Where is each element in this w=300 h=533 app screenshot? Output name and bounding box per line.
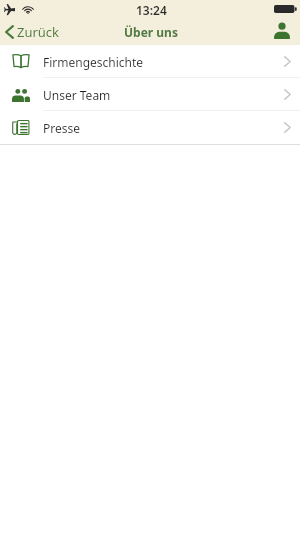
button[interactable]: Account <box>273 19 300 45</box>
staticText: Über uns <box>124 24 178 40</box>
button[interactable]: Zurück <box>0 19 68 45</box>
button[interactable]: Firmengeschichte <box>0 45 300 78</box>
button[interactable]: Presse <box>0 111 300 144</box>
staticText: 13:24 <box>136 2 167 18</box>
staticText: Zurück <box>17 23 60 41</box>
staticText: Unser Team <box>43 87 111 103</box>
staticText: Firmengeschichte <box>43 54 144 70</box>
staticText: Presse <box>43 120 81 136</box>
button[interactable]: Unser Team <box>0 78 300 111</box>
